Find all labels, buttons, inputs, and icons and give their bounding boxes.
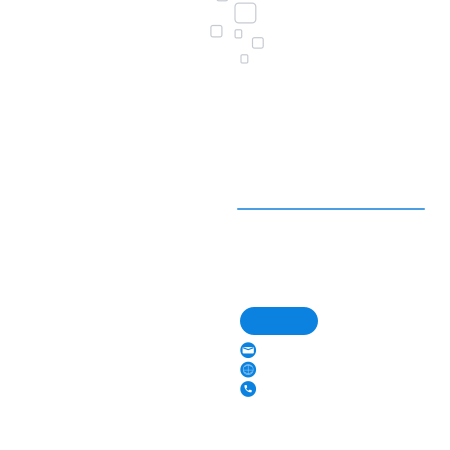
button[interactable]: www.example.com/contact	[237, 187, 425, 210]
button[interactable]: Website	[240, 362, 256, 377]
button[interactable]: Send	[240, 307, 318, 335]
button[interactable]: Call	[240, 381, 256, 397]
button[interactable]: Email	[240, 342, 256, 358]
staticText: www.example.com/contact	[237, 174, 397, 220]
